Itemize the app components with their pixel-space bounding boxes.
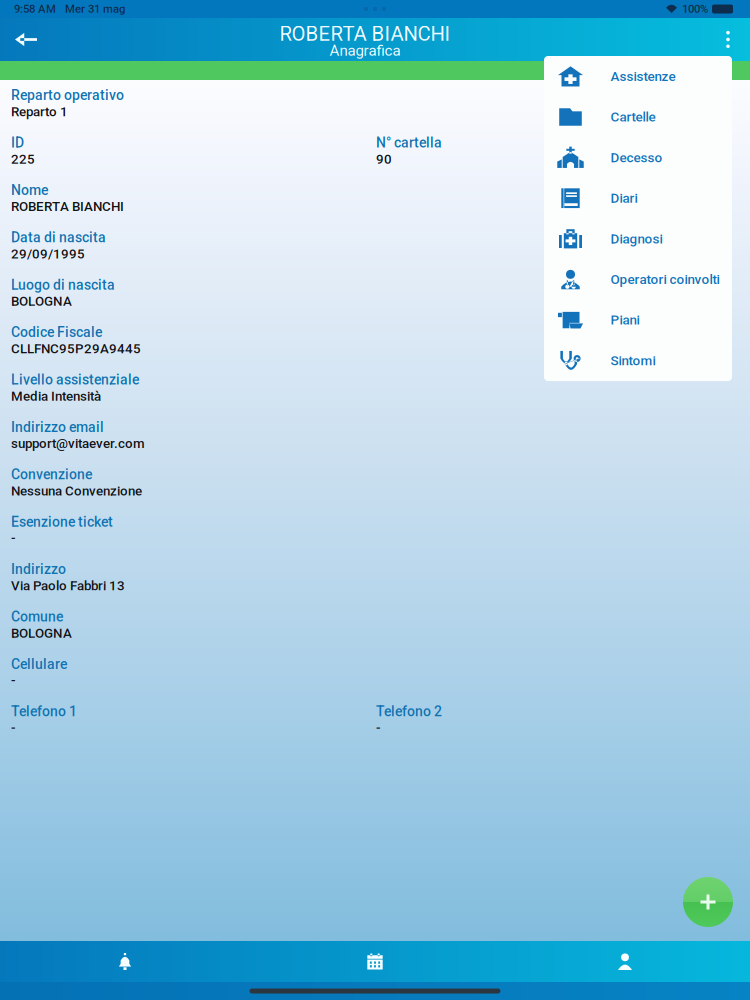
- staticText: Assistenze: [610, 68, 675, 84]
- staticText: N° cartella: [376, 134, 442, 151]
- staticText: Comune: [11, 608, 63, 625]
- staticText: 29/09/1995: [11, 246, 85, 262]
- staticText: Esenzione ticket: [11, 514, 113, 530]
- staticText: -: [11, 530, 16, 546]
- staticText: 90: [376, 151, 392, 167]
- staticText: 100%: [682, 2, 708, 16]
- button[interactable]: Operatori coinvolti: [544, 259, 732, 300]
- staticText: Anagrafica: [329, 42, 400, 59]
- staticText: CLLFNC95P29A9445: [11, 341, 141, 356]
- staticText: Luogo di nascita: [11, 277, 115, 293]
- staticText: Cartelle: [610, 109, 655, 125]
- button[interactable]: Notifiche: [0, 941, 250, 982]
- button[interactable]: Calendario: [250, 941, 500, 982]
- staticText: Piani: [610, 312, 639, 328]
- button[interactable]: Sintomi: [544, 340, 732, 381]
- staticText: ROBERTA BIANCHI: [279, 22, 450, 46]
- staticText: 225: [11, 151, 35, 167]
- staticText: -: [11, 720, 16, 736]
- button[interactable]: Decesso: [544, 137, 732, 178]
- staticText: Media Intensità: [11, 388, 101, 404]
- staticText: Telefono 1: [11, 703, 77, 720]
- staticText: Decesso: [610, 150, 662, 165]
- staticText: Indirizzo email: [11, 419, 104, 435]
- staticText: Via Paolo Fabbri 13: [11, 578, 125, 593]
- staticText: -: [376, 720, 381, 736]
- button[interactable]: Altre opzioni: [706, 18, 750, 61]
- staticText: BOLOGNA: [11, 293, 72, 309]
- button[interactable]: Diari: [544, 178, 732, 218]
- staticText: support@vitaever.com: [11, 436, 145, 451]
- staticText: Reparto operativo: [11, 87, 124, 103]
- staticText: Diagnosi: [610, 231, 662, 247]
- button[interactable]: Cartelle: [544, 97, 732, 137]
- button[interactable]: Piani: [544, 300, 732, 340]
- staticText: ROBERTA BIANCHI: [11, 199, 124, 214]
- button[interactable]: Indietro: [0, 18, 52, 61]
- staticText: Reparto 1: [11, 104, 68, 119]
- staticText: Data di nascita: [11, 229, 106, 246]
- staticText: Operatori coinvolti: [610, 271, 719, 287]
- button[interactable]: Diagnosi: [544, 218, 732, 259]
- staticText: ID: [11, 134, 24, 151]
- staticText: Sintomi: [610, 353, 655, 368]
- staticText: Convenzione: [11, 466, 92, 483]
- button[interactable]: Profilo: [500, 941, 750, 982]
- staticText: Diari: [610, 190, 637, 206]
- staticText: Cellulare: [11, 656, 67, 672]
- staticText: Mer 31 mag: [65, 2, 125, 16]
- button[interactable]: Aggiungi: [680, 874, 736, 930]
- button[interactable]: Assistenze: [544, 56, 732, 97]
- staticText: Nessuna Convenzione: [11, 483, 142, 499]
- staticText: Codice Fiscale: [11, 324, 102, 340]
- staticText: Indirizzo: [11, 561, 66, 577]
- staticText: Nome: [11, 182, 48, 198]
- staticText: Livello assistenziale: [11, 371, 139, 388]
- staticText: Telefono 2: [376, 703, 442, 720]
- staticText: 9:58 AM: [14, 2, 56, 16]
- staticText: -: [11, 673, 16, 688]
- staticText: BOLOGNA: [11, 625, 72, 641]
